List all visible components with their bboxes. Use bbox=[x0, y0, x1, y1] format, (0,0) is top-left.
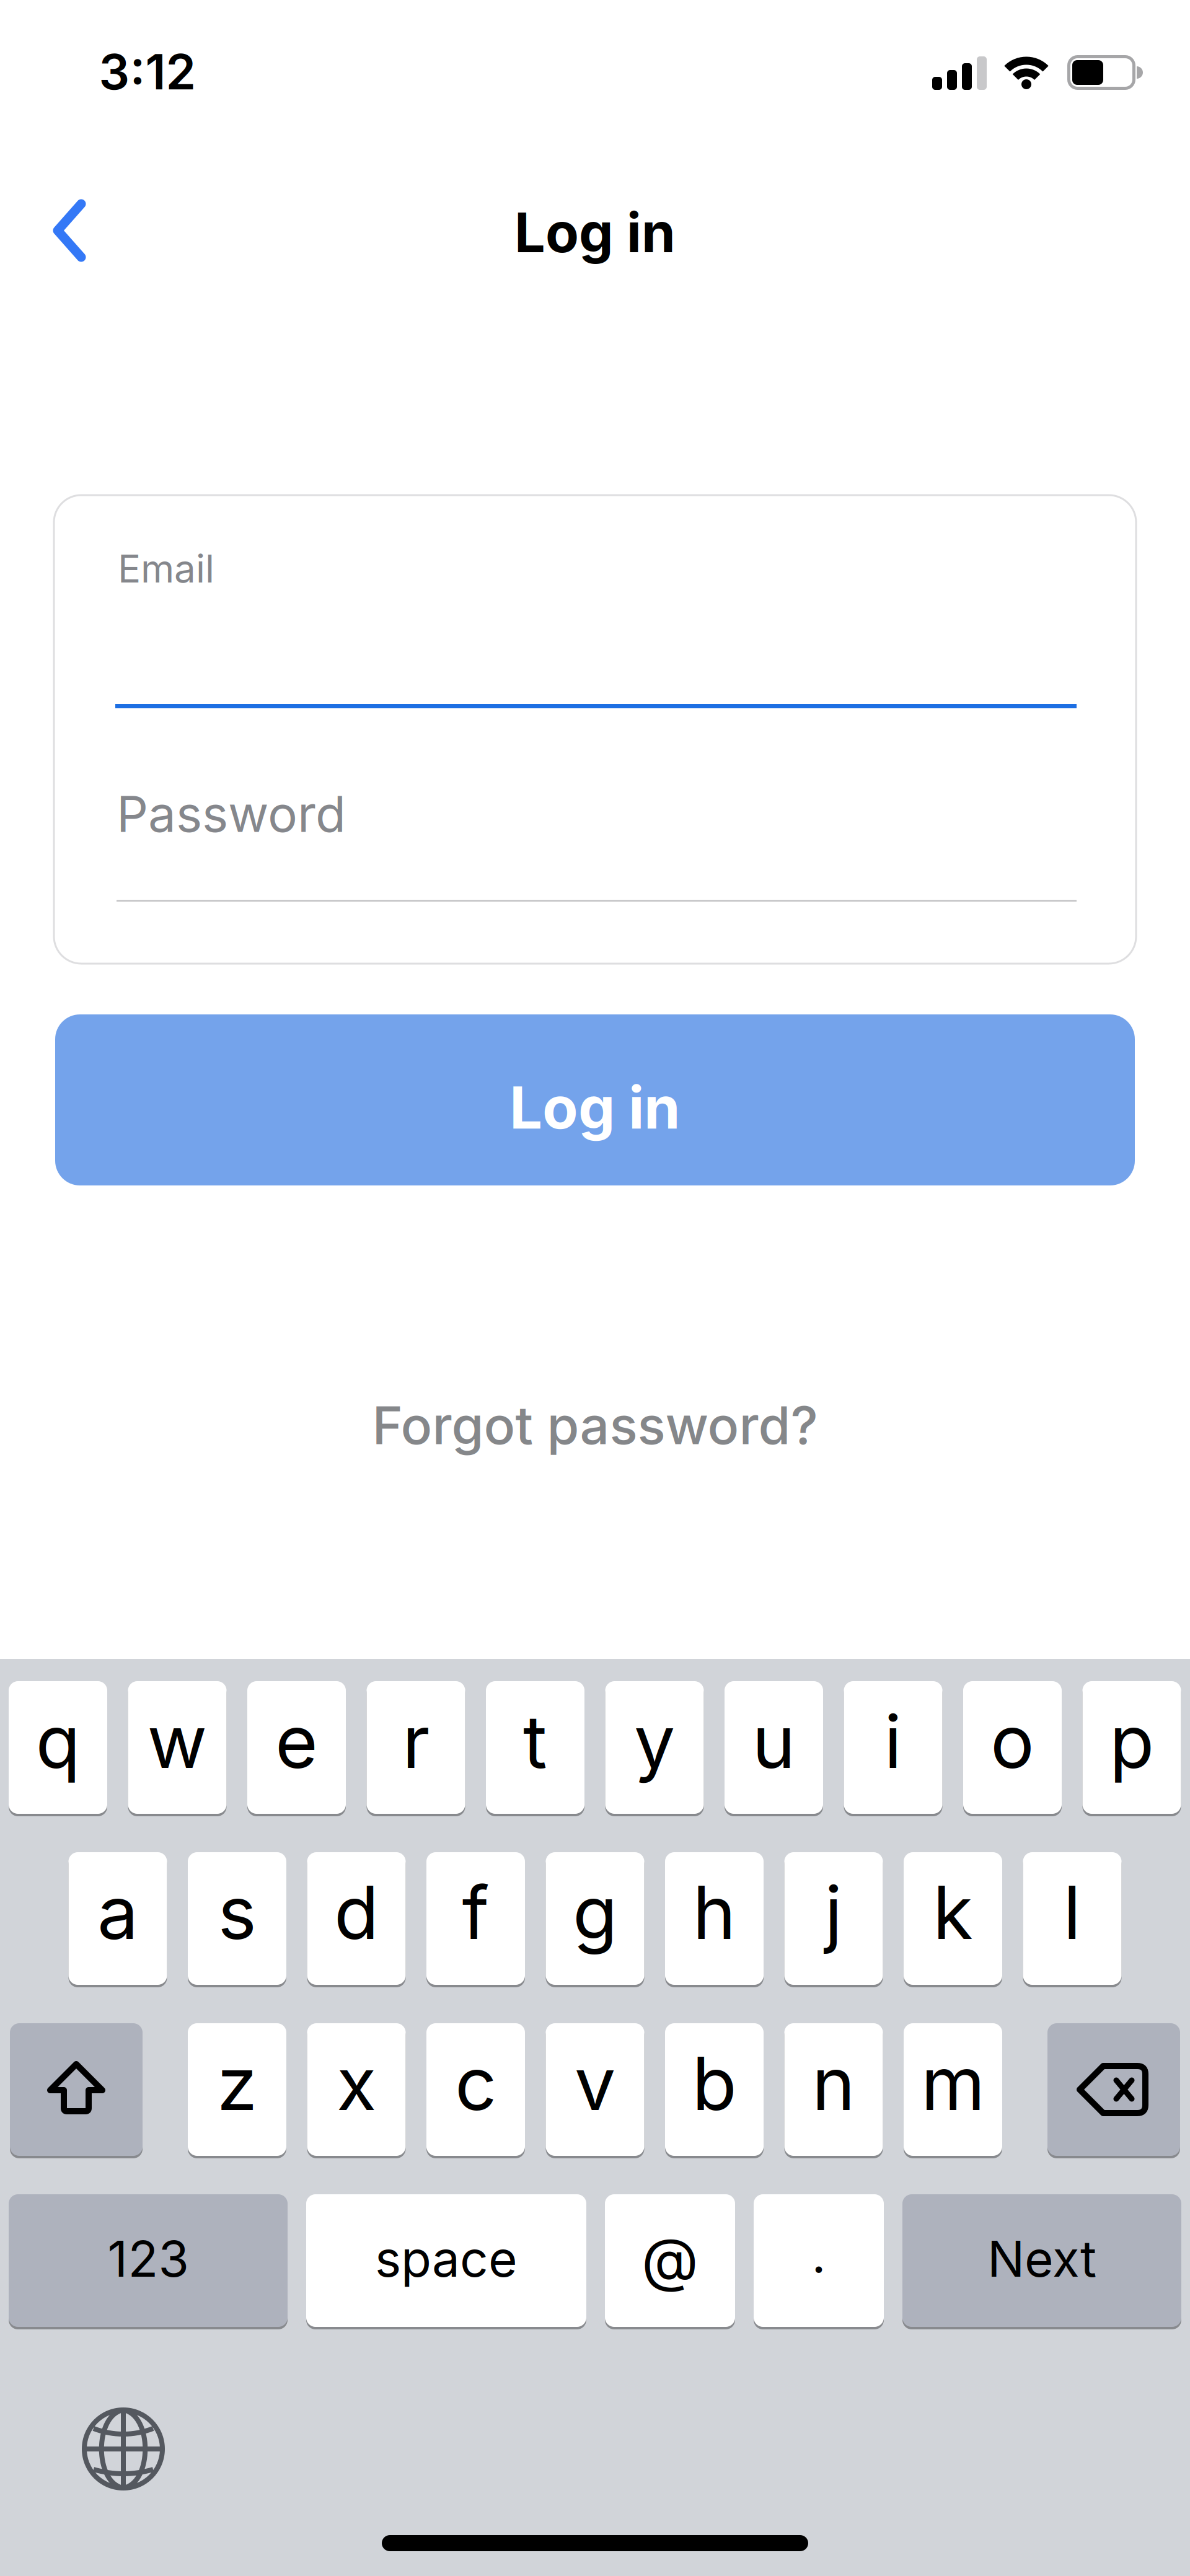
button[interactable]: n bbox=[784, 2022, 883, 2157]
button[interactable]: i bbox=[844, 1680, 942, 1815]
staticText: x bbox=[337, 2039, 376, 2128]
staticText: q bbox=[36, 1697, 80, 1786]
button[interactable]: h bbox=[665, 1851, 764, 1986]
button[interactable]: Shift bbox=[10, 2022, 143, 2157]
staticText: r bbox=[402, 1697, 430, 1786]
staticText: c bbox=[455, 2039, 496, 2128]
button[interactable]: w bbox=[128, 1680, 227, 1815]
button[interactable]: Next keyboard bbox=[82, 2407, 165, 2490]
staticText: t bbox=[523, 1697, 547, 1786]
staticText: a bbox=[97, 1868, 138, 1957]
button[interactable]: t bbox=[486, 1680, 584, 1815]
staticText: w bbox=[147, 1697, 207, 1786]
staticText: g bbox=[573, 1868, 617, 1957]
button[interactable]: e bbox=[247, 1680, 346, 1815]
button[interactable]: Email bbox=[115, 537, 1077, 708]
button[interactable]: o bbox=[963, 1680, 1062, 1815]
button[interactable]: k bbox=[904, 1851, 1002, 1986]
button[interactable]: Log in bbox=[55, 1014, 1135, 1185]
staticText: @ bbox=[641, 2224, 699, 2295]
staticText: y bbox=[634, 1697, 675, 1786]
staticText: j bbox=[825, 1868, 843, 1957]
button[interactable]: d bbox=[307, 1851, 406, 1986]
staticText: b bbox=[692, 2039, 737, 2128]
staticText: u bbox=[752, 1697, 796, 1786]
staticText: Log in bbox=[514, 199, 676, 265]
button[interactable]: v bbox=[546, 2022, 644, 2157]
button[interactable]: 123 bbox=[9, 2193, 288, 2328]
button[interactable]: x bbox=[307, 2022, 406, 2157]
button[interactable]: m bbox=[904, 2022, 1002, 2157]
staticText: p bbox=[1109, 1697, 1154, 1786]
staticText: Email bbox=[118, 545, 214, 592]
staticText: Password bbox=[117, 784, 346, 844]
button[interactable]: b bbox=[665, 2022, 764, 2157]
staticText: f bbox=[462, 1868, 489, 1957]
staticText: . bbox=[812, 2224, 826, 2284]
button[interactable]: Forgot password? bbox=[372, 1394, 818, 1457]
button[interactable]: l bbox=[1023, 1851, 1122, 1986]
button[interactable]: Next bbox=[902, 2193, 1181, 2328]
staticText: i bbox=[884, 1697, 902, 1786]
staticText: m bbox=[921, 2039, 985, 2128]
staticText: n bbox=[812, 2039, 855, 2128]
button[interactable]: f bbox=[426, 1851, 525, 1986]
button[interactable]: p bbox=[1082, 1680, 1181, 1815]
staticText: 123 bbox=[108, 2229, 189, 2289]
staticText: 3:12 bbox=[99, 43, 196, 101]
staticText: o bbox=[990, 1697, 1034, 1786]
staticText: h bbox=[693, 1868, 736, 1957]
button[interactable]: Password bbox=[117, 768, 1077, 902]
staticText: Forgot password? bbox=[372, 1394, 818, 1457]
button[interactable]: s bbox=[188, 1851, 286, 1986]
button[interactable]: u bbox=[725, 1680, 823, 1815]
staticText: Next bbox=[987, 2229, 1096, 2289]
staticText: Log in bbox=[509, 1072, 681, 1143]
button[interactable]: g bbox=[546, 1851, 644, 1986]
button[interactable]: space bbox=[306, 2193, 586, 2328]
staticText: l bbox=[1063, 1868, 1081, 1957]
button[interactable]: j bbox=[784, 1851, 883, 1986]
button[interactable]: c bbox=[426, 2022, 525, 2157]
button[interactable]: Delete bbox=[1047, 2022, 1180, 2157]
staticText: d bbox=[334, 1868, 379, 1957]
staticText: z bbox=[217, 2039, 257, 2128]
button[interactable]: a bbox=[68, 1851, 167, 1986]
button[interactable]: Back bbox=[35, 190, 104, 271]
button[interactable]: z bbox=[188, 2022, 286, 2157]
staticText: e bbox=[275, 1697, 318, 1786]
staticText: k bbox=[933, 1868, 973, 1957]
button[interactable]: q bbox=[9, 1680, 107, 1815]
staticText: v bbox=[575, 2039, 615, 2128]
button[interactable]: . bbox=[754, 2193, 884, 2328]
button[interactable]: y bbox=[605, 1680, 704, 1815]
button[interactable]: @ bbox=[605, 2193, 735, 2328]
button[interactable]: r bbox=[367, 1680, 465, 1815]
staticText: space bbox=[375, 2229, 518, 2289]
staticText: s bbox=[218, 1868, 256, 1957]
